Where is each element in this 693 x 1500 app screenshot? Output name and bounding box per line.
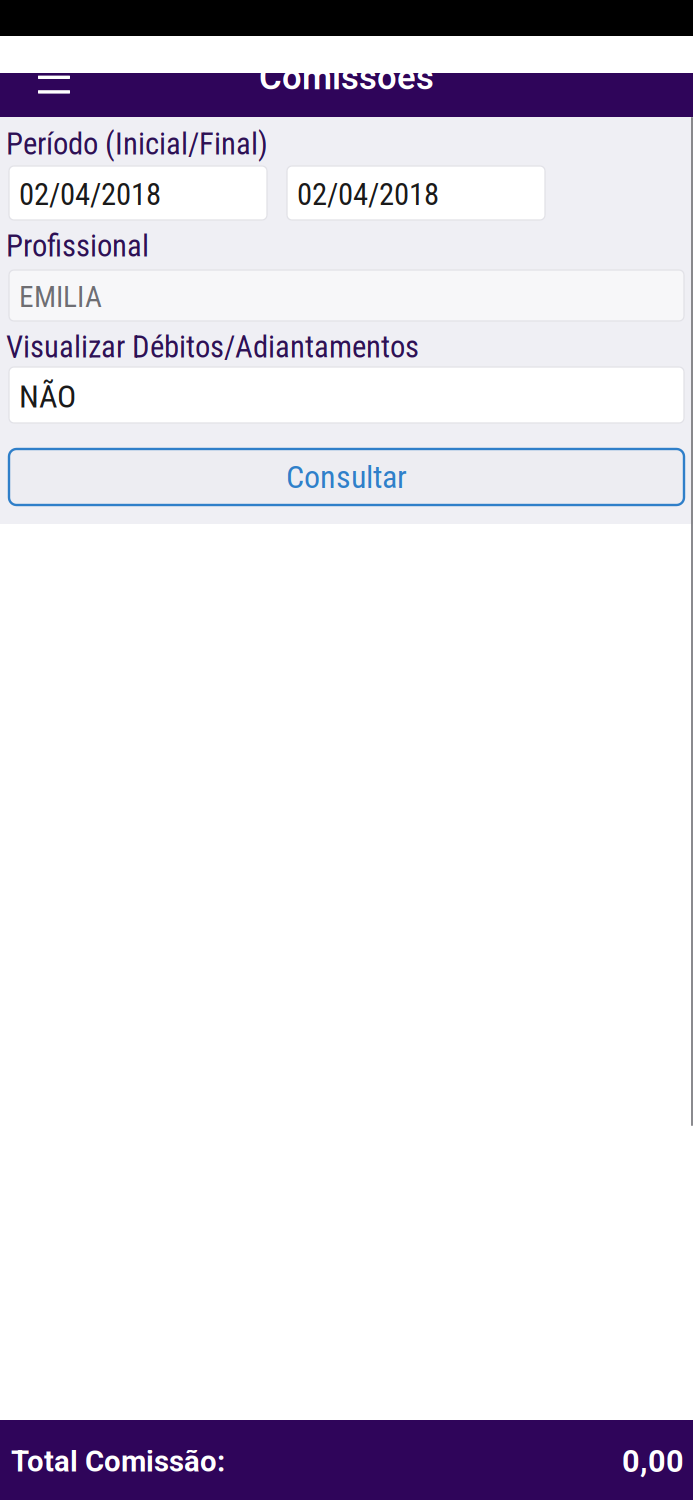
staticText: 0,00 [622, 1443, 684, 1479]
staticText: Consultar [286, 458, 407, 496]
staticText: NÃO [19, 378, 76, 415]
staticText: Visualizar Débitos/Adiantamentos [6, 329, 419, 365]
staticText: Profissional [6, 228, 149, 264]
staticText: 02/04/2018 [297, 176, 439, 212]
button[interactable]: 02/04/2018 [9, 166, 267, 220]
button[interactable]: Consultar [9, 449, 684, 505]
button[interactable]: 02/04/2018 [287, 166, 545, 220]
button[interactable]: Menu [19, 36, 89, 117]
staticText: Comissões [259, 57, 434, 98]
staticText: Período (Inicial/Final) [6, 126, 268, 162]
staticText: Total Comissão: [11, 1444, 225, 1479]
button[interactable]: NÃO [9, 367, 684, 423]
button[interactable]: EMILIA [9, 270, 684, 321]
staticText: 02/04/2018 [19, 176, 161, 212]
staticText: EMILIA [19, 280, 102, 314]
